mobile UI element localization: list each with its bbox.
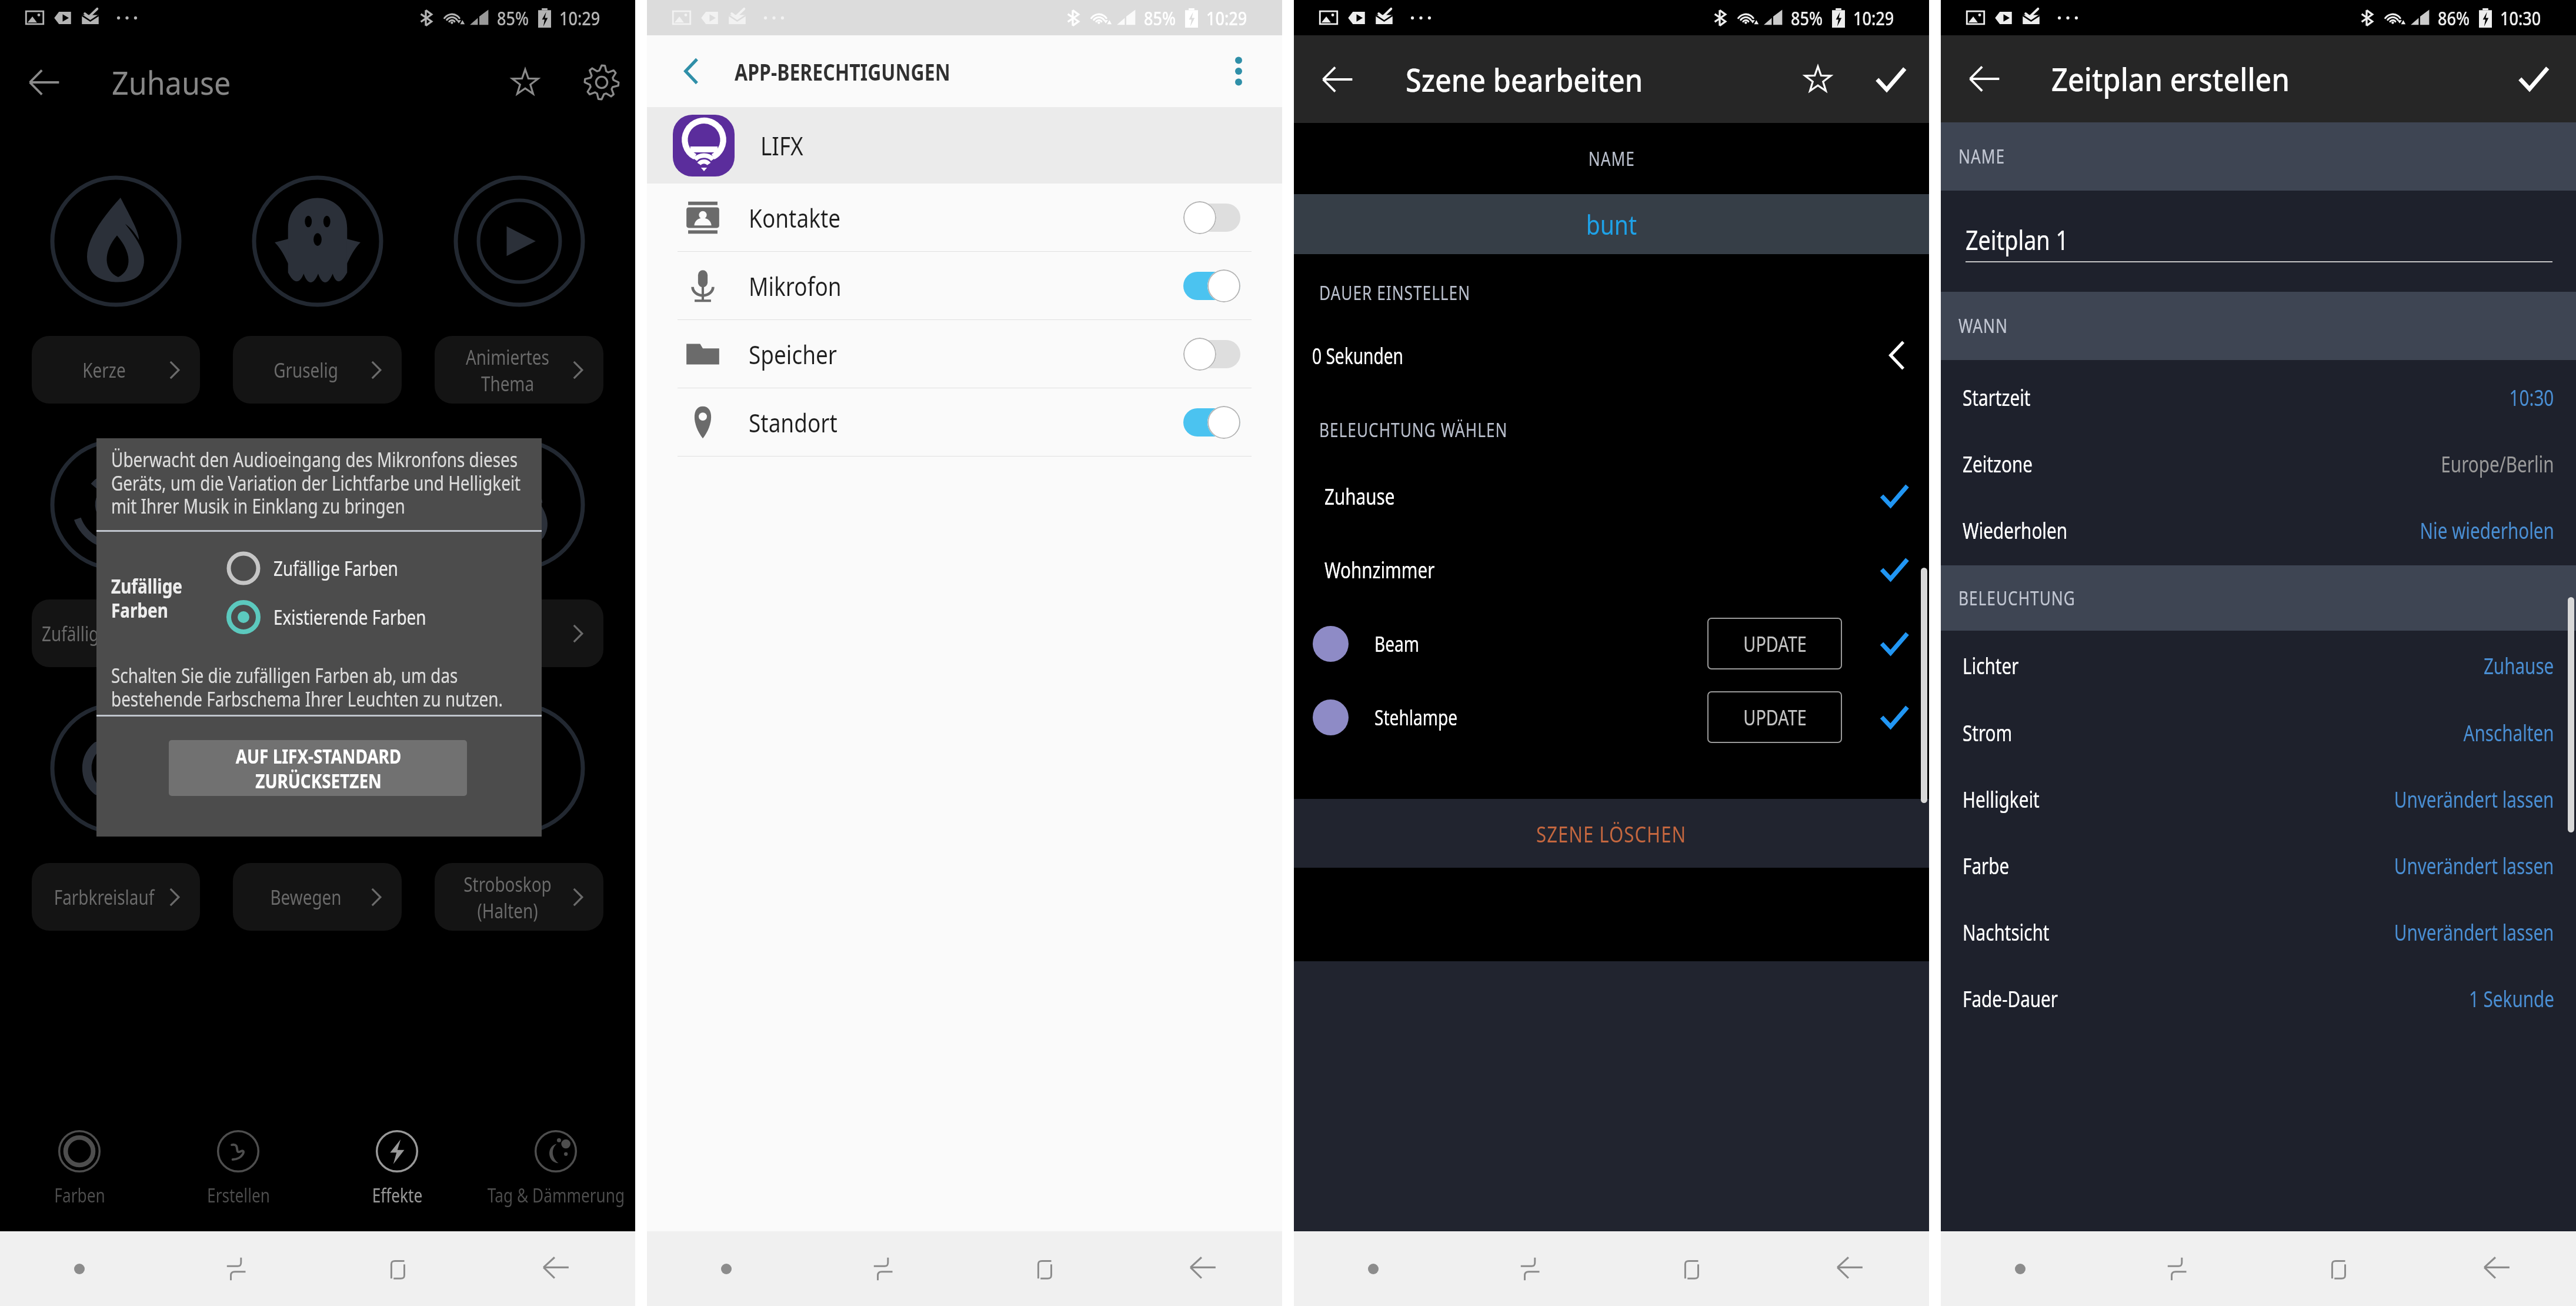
staticText: 0 Sekunden (1312, 340, 1404, 371)
staticText: bunt (1586, 206, 1637, 243)
staticText: Unverändert lassen (2394, 917, 2554, 947)
staticText: Überwacht den Audioeingang des Mikronfon… (111, 446, 526, 519)
staticText: UPDATE (1716, 629, 1834, 658)
button[interactable]: Kontakte (647, 184, 1282, 251)
staticText: WANN (1958, 313, 2008, 339)
staticText: Anschalten (2463, 717, 2554, 748)
staticText: 86% (2438, 5, 2470, 31)
staticText: NAME (1958, 144, 2005, 169)
button[interactable]: AUF LIFX-STANDARD ZURÜCKSETZEN (169, 740, 467, 796)
staticText: Zufällige Farben (273, 555, 398, 582)
button[interactable]: Zufällige Farben (50, 439, 182, 571)
staticText: Musik (242, 620, 370, 647)
button[interactable]: Startzeit (1941, 364, 2576, 430)
button[interactable]: Zufällige Farben (226, 551, 426, 586)
staticText: 10:29 (1853, 5, 1894, 31)
button[interactable]: bunt (1294, 194, 1929, 254)
staticText: Mikrofon (749, 268, 842, 304)
staticText: Strom (1963, 717, 2013, 748)
button[interactable]: Stroboskop (Halten) (453, 702, 585, 834)
button[interactable]: Bewegen (252, 702, 383, 834)
staticText: Zuhause (2484, 650, 2554, 681)
button[interactable]: Kerze (32, 336, 200, 404)
button[interactable]: Back (22, 60, 66, 105)
button[interactable]: Back (1963, 58, 2006, 100)
staticText: Existierende Farben (273, 604, 426, 631)
button[interactable]: Fade-Dauer (1941, 965, 2576, 1031)
staticText: Helligkeit (1963, 784, 2040, 814)
button[interactable]: Animiertes Thema (453, 175, 585, 307)
staticText: Kontakte (749, 200, 841, 235)
button[interactable]: Back (1316, 58, 1359, 101)
button[interactable]: Stehlampe (1294, 684, 1929, 750)
staticText: Zuhause (1324, 481, 1395, 511)
button[interactable]: Existierende Farben (226, 599, 460, 635)
staticText: Bewegen (242, 884, 370, 911)
button[interactable]: Nachtsicht (1941, 899, 2576, 965)
button[interactable]: Speicher (647, 320, 1282, 388)
staticText: Farbkreislauf (40, 884, 168, 911)
staticText: 85% (1791, 5, 1823, 31)
staticText: Unverändert lassen (2394, 784, 2554, 814)
button[interactable]: Flamme (435, 599, 603, 667)
button[interactable]: Farbkreislauf (50, 702, 182, 834)
staticText: Stehlampe (1374, 703, 1457, 732)
button[interactable]: Beam (1294, 611, 1929, 677)
button[interactable]: More options (1219, 51, 1259, 91)
button[interactable]: Stroboskop (Halten) (435, 863, 603, 931)
button[interactable]: Mikrofon (647, 252, 1282, 319)
button[interactable]: Lichter (1941, 632, 2576, 698)
button[interactable]: Zeitzone (1941, 431, 2576, 497)
staticText: Standort (749, 405, 838, 440)
button[interactable]: Gruselig (233, 336, 402, 404)
staticText: Beam (1374, 629, 1419, 658)
button[interactable]: Wiederholen (1941, 497, 2576, 563)
button[interactable]: Bewegen (233, 863, 402, 931)
staticText: Wiederholen (1963, 515, 2068, 545)
staticText: Lichter (1963, 650, 2019, 681)
button[interactable]: Effekte (318, 1105, 476, 1231)
button[interactable]: Favourite (503, 60, 548, 105)
staticText: 10:29 (559, 5, 600, 31)
button[interactable]: Favourite (1797, 58, 1839, 101)
button[interactable]: Zufällige Farben (32, 599, 200, 667)
button[interactable]: UPDATE (1707, 618, 1842, 669)
staticText: Zeitplan 1 (1966, 221, 2069, 258)
button[interactable]: Gruselig (252, 175, 383, 307)
staticText: AUF LIFX-STANDARD ZURÜCKSETZEN (183, 742, 454, 794)
staticText: BELEUCHTUNG WÄHLEN (1319, 417, 1508, 443)
staticText: DAUER EINSTELLEN (1319, 280, 1471, 306)
button[interactable]: Wohnzimmer (1294, 537, 1929, 602)
staticText: BELEUCHTUNG (1958, 585, 2076, 611)
button[interactable]: Save (1870, 58, 1912, 101)
button[interactable]: LIFX (647, 107, 1282, 184)
button[interactable]: Flamme (453, 439, 585, 571)
button[interactable]: Farbe (1941, 832, 2576, 898)
button[interactable]: Farbkreislauf (32, 863, 200, 931)
button[interactable]: Farben (0, 1105, 159, 1231)
button[interactable]: Erstellen (159, 1105, 318, 1231)
button[interactable]: SZENE LÖSCHEN (1294, 799, 1929, 868)
button[interactable]: Strom (1941, 699, 2576, 765)
button[interactable]: Helligkeit (1941, 766, 2576, 832)
button[interactable]: Zuhause (1294, 463, 1929, 529)
button[interactable]: Tag & Dämmerung (476, 1105, 635, 1231)
button[interactable]: 0 Sekunden (1294, 322, 1929, 388)
button[interactable]: Animiertes Thema (435, 336, 603, 404)
staticText: Europe/Berlin (2441, 448, 2554, 479)
staticText: 1 Sekunde (2469, 983, 2554, 1014)
button[interactable]: Standort (647, 388, 1282, 456)
staticText: Tag & Dämmerung (477, 1182, 635, 1208)
button[interactable]: Settings (579, 60, 624, 105)
button[interactable]: Musik (252, 439, 383, 571)
button[interactable]: UPDATE (1707, 691, 1842, 743)
staticText: Zufällige Farben (111, 572, 211, 624)
staticText: Animiertes Thema (443, 344, 572, 397)
button[interactable]: Kerze (50, 175, 182, 307)
button[interactable]: Musik (233, 599, 402, 667)
button[interactable]: Save (2512, 58, 2555, 100)
staticText: Nie wiederholen (2420, 515, 2554, 545)
staticText: UPDATE (1716, 703, 1834, 732)
button[interactable]: Back (670, 51, 710, 91)
staticText: Effekte (318, 1182, 476, 1208)
